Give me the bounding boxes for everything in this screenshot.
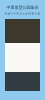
staticText: 穿越千年时光之旅探索古都 [4,12,40,15]
staticText: 中置造型公园集合 [6,5,38,10]
